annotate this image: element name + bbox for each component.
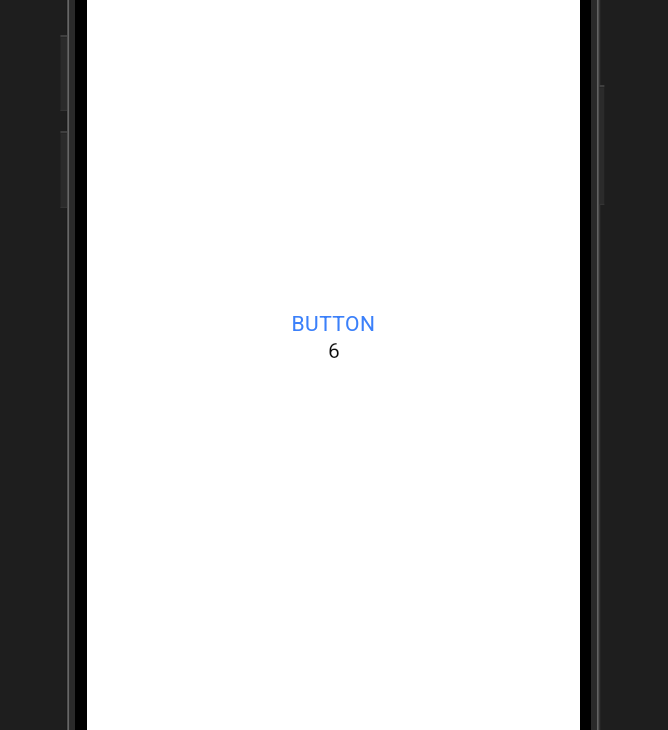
button[interactable]: Volume down [61, 131, 68, 208]
button[interactable]: Volume up [61, 35, 68, 111]
staticText: 6 [328, 339, 340, 364]
button[interactable]: Power [600, 85, 605, 205]
button[interactable]: BUTTON [279, 299, 388, 350]
staticText: BUTTON [291, 312, 376, 337]
